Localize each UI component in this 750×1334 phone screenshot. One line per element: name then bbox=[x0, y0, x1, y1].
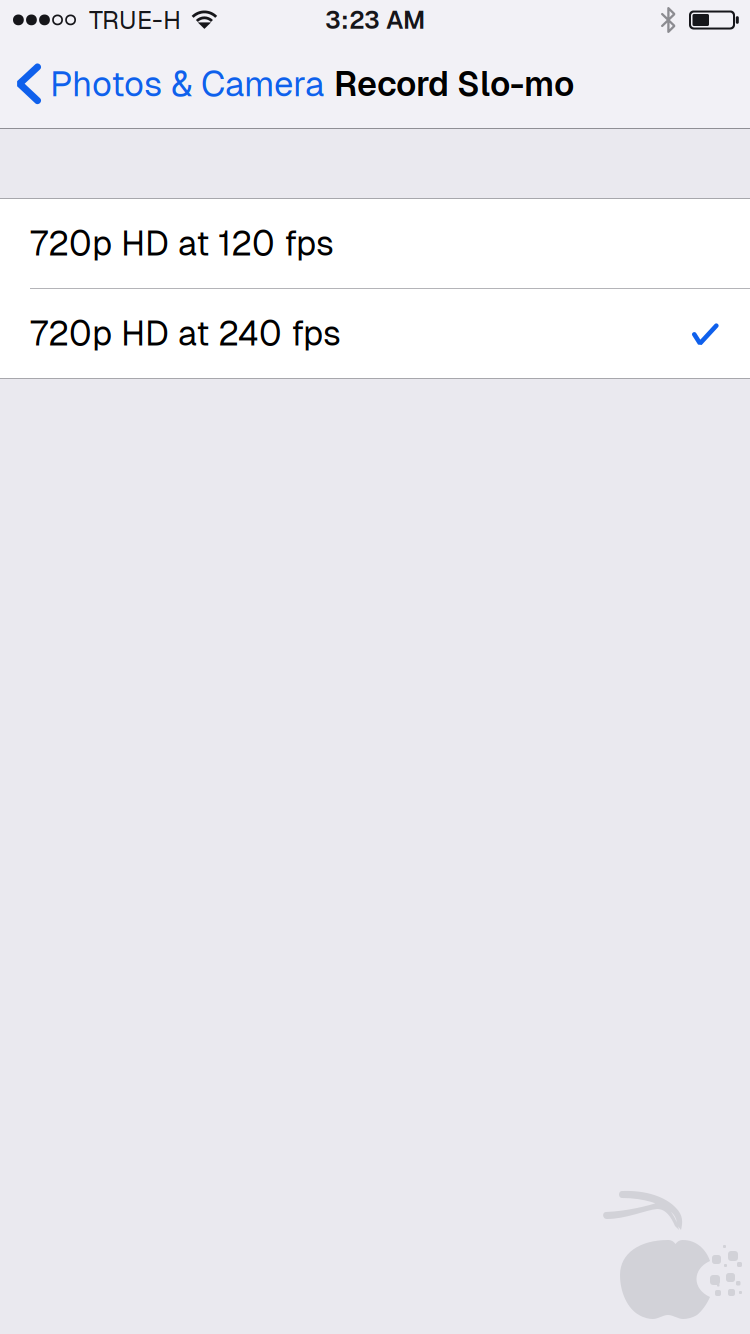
staticText: Record Slo-mo bbox=[334, 62, 574, 106]
button[interactable]: 720p HD at 120 fps bbox=[0, 199, 750, 288]
staticText: 720p HD at 120 fps bbox=[30, 221, 334, 266]
staticText: 3:23 AM bbox=[325, 4, 425, 36]
button[interactable]: 720p HD at 240 fps bbox=[0, 289, 750, 378]
button[interactable]: Photos & Camera bbox=[0, 40, 334, 128]
staticText: 720p HD at 240 fps bbox=[30, 311, 341, 356]
staticText: Photos & Camera bbox=[50, 61, 324, 107]
staticText: TRUE-H bbox=[89, 3, 181, 36]
